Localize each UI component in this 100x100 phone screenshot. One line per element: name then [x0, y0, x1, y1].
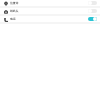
- staticText: 电话: [10, 17, 16, 21]
- other: Location: [4, 2, 8, 6]
- staticText: 位置信: [10, 1, 19, 5]
- button[interactable]: Toggle Phone: [88, 17, 97, 21]
- button[interactable]: Toggle Location: [88, 1, 97, 5]
- staticText: 相机头: [10, 9, 19, 13]
- button[interactable]: Location: [0, 0, 100, 6]
- other: Camera: [4, 10, 8, 14]
- button[interactable]: Camera: [0, 8, 100, 14]
- other: Phone: [4, 18, 8, 22]
- button[interactable]: Toggle Camera: [88, 9, 97, 13]
- button[interactable]: Phone: [0, 16, 100, 22]
